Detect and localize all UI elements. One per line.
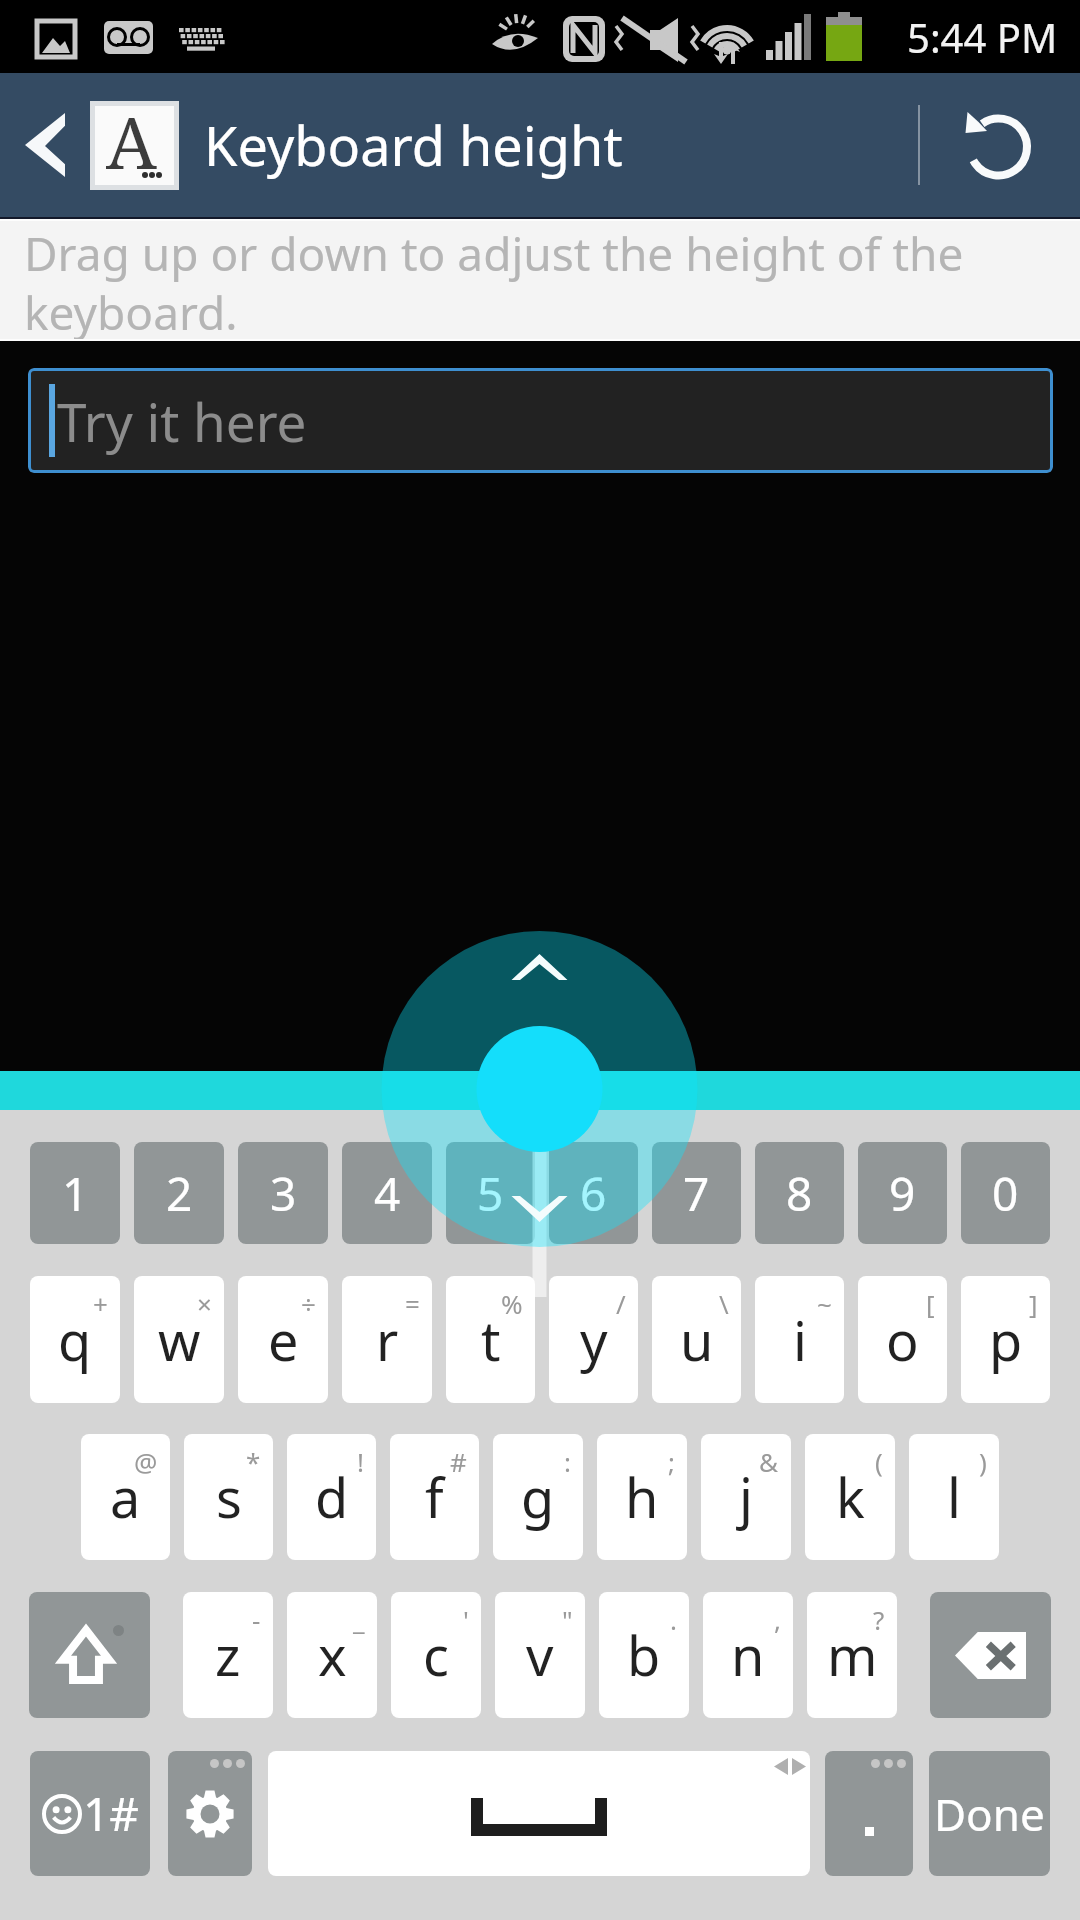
staticText: e bbox=[268, 1303, 299, 1377]
staticText: c bbox=[423, 1618, 449, 1692]
button[interactable]: v bbox=[495, 1592, 585, 1718]
button[interactable]: m bbox=[807, 1592, 897, 1718]
staticText: ; bbox=[668, 1444, 675, 1479]
staticText: i bbox=[793, 1303, 807, 1377]
button[interactable]: s bbox=[184, 1434, 273, 1560]
staticText: 4 bbox=[374, 1162, 401, 1225]
staticText: , bbox=[774, 1602, 781, 1637]
button[interactable]: b bbox=[599, 1592, 689, 1718]
staticText: x bbox=[318, 1618, 347, 1692]
button[interactable]: 8 bbox=[755, 1142, 844, 1244]
staticText: l bbox=[947, 1460, 961, 1534]
staticText: % bbox=[501, 1286, 523, 1321]
staticText: z bbox=[215, 1618, 241, 1692]
button[interactable]: z bbox=[183, 1592, 273, 1718]
button[interactable]: 0 bbox=[961, 1142, 1050, 1244]
staticText: n bbox=[731, 1618, 765, 1692]
staticText: p bbox=[989, 1303, 1023, 1377]
staticText: + bbox=[93, 1286, 108, 1321]
staticText: r bbox=[376, 1303, 399, 1377]
button[interactable]: h bbox=[597, 1434, 687, 1560]
button[interactable]: r bbox=[342, 1276, 432, 1403]
staticText: u bbox=[680, 1303, 714, 1377]
button[interactable]: 4 bbox=[342, 1142, 432, 1244]
button[interactable]: l bbox=[909, 1434, 999, 1560]
staticText: b bbox=[627, 1618, 661, 1692]
staticText: 1 bbox=[62, 1162, 89, 1225]
button[interactable]: y bbox=[549, 1276, 638, 1403]
button[interactable]: 6 bbox=[549, 1142, 638, 1244]
staticText: j bbox=[739, 1460, 753, 1534]
button[interactable]: 3 bbox=[238, 1142, 328, 1244]
staticText: q bbox=[58, 1303, 92, 1377]
staticText: ' bbox=[463, 1602, 469, 1637]
button[interactable]: w bbox=[134, 1276, 224, 1403]
staticText: ! bbox=[357, 1444, 364, 1479]
staticText: Keyboard height bbox=[204, 108, 623, 182]
staticText: f bbox=[425, 1460, 444, 1534]
button[interactable]: 9 bbox=[858, 1142, 947, 1244]
button[interactable]: Try it here bbox=[28, 368, 1053, 473]
button[interactable]: 5 bbox=[446, 1142, 535, 1244]
staticText: k bbox=[836, 1460, 865, 1534]
staticText: # bbox=[450, 1444, 467, 1479]
button[interactable]: Backspace bbox=[930, 1592, 1051, 1718]
staticText: g bbox=[521, 1460, 555, 1534]
staticText: 3 bbox=[270, 1162, 297, 1225]
button[interactable]: Period bbox=[825, 1751, 913, 1876]
button[interactable]: g bbox=[493, 1434, 583, 1560]
button[interactable]: t bbox=[446, 1276, 535, 1403]
button[interactable]: Shift bbox=[29, 1592, 150, 1718]
button[interactable]: 2 bbox=[134, 1142, 224, 1244]
staticText: ~ bbox=[817, 1286, 832, 1321]
button[interactable]: f bbox=[390, 1434, 479, 1560]
staticText: h bbox=[625, 1460, 659, 1534]
staticText: m bbox=[827, 1618, 878, 1692]
button[interactable]: d bbox=[287, 1434, 376, 1560]
staticText: * bbox=[246, 1444, 261, 1479]
button[interactable]: p bbox=[961, 1276, 1050, 1403]
staticText: A bbox=[106, 92, 157, 171]
button[interactable]: Emoji and symbols bbox=[30, 1751, 150, 1876]
button[interactable]: Back bbox=[0, 73, 90, 217]
staticText: 1# bbox=[83, 1782, 140, 1845]
button[interactable]: k bbox=[805, 1434, 895, 1560]
staticText: s bbox=[216, 1460, 242, 1534]
button[interactable]: Reset bbox=[920, 73, 1080, 217]
staticText: 6 bbox=[580, 1162, 607, 1225]
staticText: Try it here bbox=[57, 385, 307, 457]
button[interactable]: Settings bbox=[168, 1751, 252, 1876]
button[interactable]: e bbox=[238, 1276, 328, 1403]
button[interactable]: n bbox=[703, 1592, 793, 1718]
button[interactable]: x bbox=[287, 1592, 377, 1718]
button[interactable]: a bbox=[81, 1434, 170, 1560]
button[interactable]: u bbox=[652, 1276, 741, 1403]
staticText: ÷ bbox=[301, 1286, 316, 1321]
staticText: t bbox=[481, 1303, 501, 1377]
staticText: v bbox=[526, 1618, 554, 1692]
button[interactable]: Space bbox=[268, 1751, 810, 1876]
staticText: 0 bbox=[992, 1162, 1019, 1225]
button[interactable]: q bbox=[30, 1276, 120, 1403]
staticText: " bbox=[562, 1602, 573, 1637]
staticText: Done bbox=[934, 1784, 1045, 1844]
staticText: ] bbox=[1029, 1286, 1038, 1321]
staticText: - bbox=[252, 1602, 261, 1637]
staticText: 2 bbox=[166, 1162, 193, 1225]
button[interactable]: i bbox=[755, 1276, 844, 1403]
button[interactable]: c bbox=[391, 1592, 481, 1718]
staticText: \ bbox=[719, 1286, 729, 1321]
button[interactable]: o bbox=[858, 1276, 947, 1403]
staticText: ? bbox=[873, 1602, 885, 1637]
staticText: [ bbox=[926, 1286, 935, 1321]
staticText: × bbox=[197, 1286, 212, 1321]
button[interactable]: 1 bbox=[30, 1142, 120, 1244]
staticText: w bbox=[158, 1303, 201, 1377]
staticText: 5:44 PM bbox=[907, 10, 1058, 64]
staticText: / bbox=[616, 1286, 626, 1321]
button[interactable]: 7 bbox=[652, 1142, 741, 1244]
staticText: Drag up or down to adjust the height of … bbox=[24, 222, 1000, 339]
staticText: d bbox=[315, 1460, 349, 1534]
button[interactable]: j bbox=[701, 1434, 791, 1560]
button[interactable]: Done bbox=[929, 1751, 1050, 1876]
